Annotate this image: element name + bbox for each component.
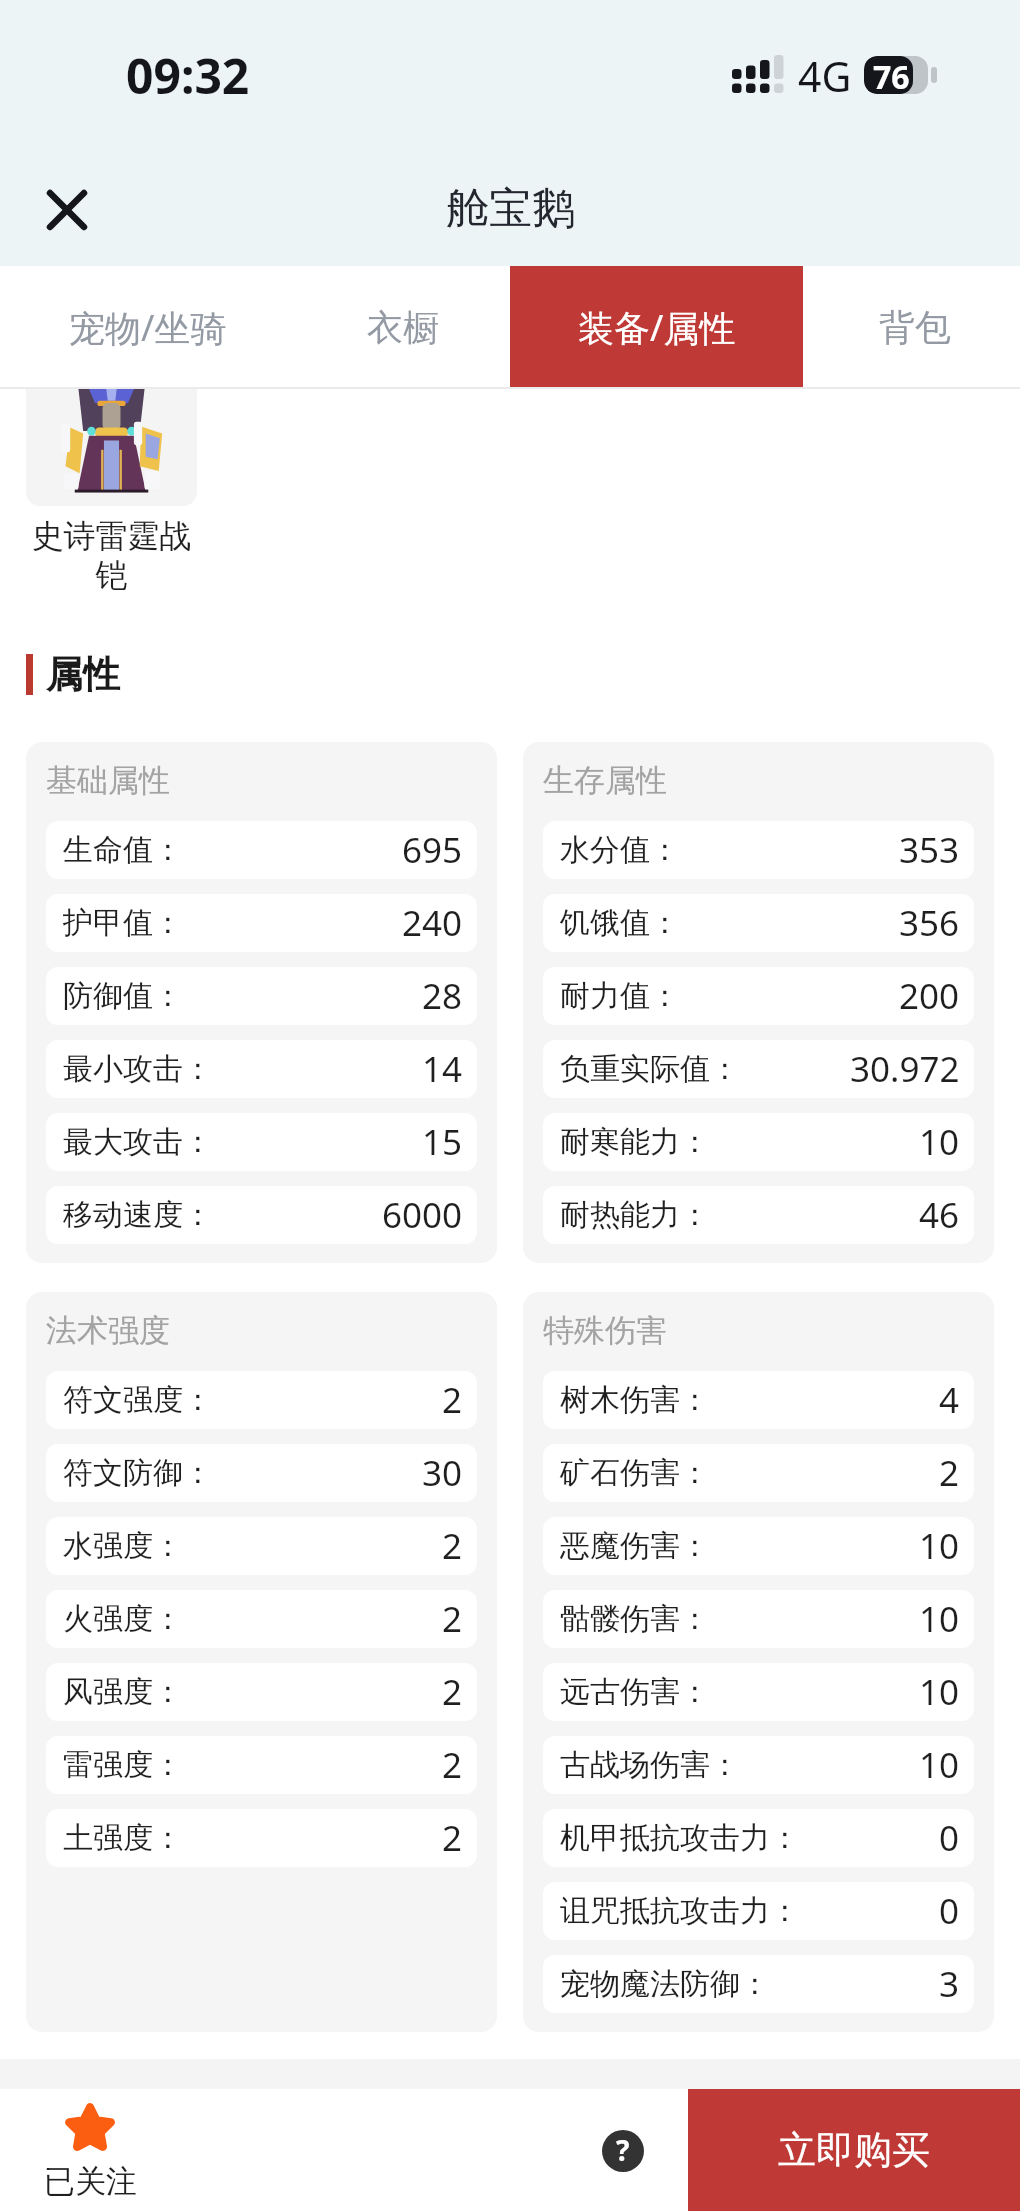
staticText: 风强度： [63, 1673, 183, 1711]
button[interactable]: 防御值： [46, 967, 477, 1025]
staticText: 695 [402, 826, 463, 874]
staticText: 衣橱 [367, 305, 439, 350]
staticText: 史诗雷霆战铠 [26, 516, 197, 596]
button[interactable]: 耐力值： [543, 967, 974, 1025]
staticText: 土强度： [63, 1819, 183, 1857]
button[interactable]: 负重实际值： [543, 1040, 974, 1098]
staticText: 耐力值： [560, 977, 680, 1015]
staticText: 负重实际值： [560, 1050, 740, 1088]
staticText: 火强度： [63, 1600, 183, 1638]
staticText: 14 [422, 1045, 463, 1093]
staticText: 符文强度： [63, 1381, 213, 1419]
staticText: 4 [939, 1376, 960, 1424]
staticText: 353 [899, 826, 960, 874]
button[interactable]: 机甲抵抗攻击力： [543, 1809, 974, 1867]
staticText: 耐热能力： [560, 1196, 710, 1234]
staticText: 防御值： [63, 977, 183, 1015]
staticText: 2 [442, 1376, 463, 1424]
staticText: 最小攻击： [63, 1050, 213, 1088]
staticText: 属性 [46, 651, 120, 698]
button[interactable]: 水强度： [46, 1517, 477, 1575]
staticText: 饥饿值： [560, 904, 680, 942]
button[interactable]: 移动速度： [46, 1186, 477, 1244]
staticText: 诅咒抵抗攻击力： [560, 1892, 800, 1930]
staticText: 背包 [879, 305, 951, 350]
button[interactable]: 护甲值： [46, 894, 477, 952]
button[interactable]: 古战场伤害： [543, 1736, 974, 1794]
staticText: 生存属性 [543, 761, 667, 800]
staticText: 4G [798, 48, 852, 104]
staticText: 矿石伤害： [560, 1454, 710, 1492]
staticText: 机甲抵抗攻击力： [560, 1819, 800, 1857]
button[interactable]: 已关注 [20, 2089, 160, 2211]
staticText: 已关注 [44, 2162, 137, 2201]
staticText: 雷强度： [63, 1746, 183, 1784]
staticText: 水分值： [560, 831, 680, 869]
staticText: 10 [919, 1595, 960, 1643]
staticText: 0 [939, 1814, 960, 1862]
staticText: 基础属性 [46, 761, 170, 800]
staticText: 30 [422, 1449, 463, 1497]
button[interactable]: 生命值： [46, 821, 477, 879]
button[interactable]: 立即购买 [688, 2089, 1020, 2211]
button[interactable]: 矿石伤害： [543, 1444, 974, 1502]
staticText: 2 [442, 1814, 463, 1862]
button[interactable]: 远古伤害： [543, 1663, 974, 1721]
staticText: 宠物魔法防御： [560, 1965, 770, 2003]
button[interactable]: 符文防御： [46, 1444, 477, 1502]
staticText: 3 [939, 1960, 960, 2008]
staticText: 2 [442, 1668, 463, 1716]
button[interactable]: 树木伤害： [543, 1371, 974, 1429]
button[interactable]: 雷强度： [46, 1736, 477, 1794]
staticText: 6000 [382, 1191, 463, 1239]
staticText: 10 [919, 1118, 960, 1166]
button[interactable]: 符文强度： [46, 1371, 477, 1429]
staticText: 2 [442, 1595, 463, 1643]
staticText: 2 [939, 1449, 960, 1497]
staticText: 立即购买 [778, 2126, 930, 2174]
staticText: 符文防御： [63, 1454, 213, 1492]
staticText: 恶魔伤害： [560, 1527, 710, 1565]
staticText: 移动速度： [63, 1196, 213, 1234]
button[interactable]: 恶魔伤害： [543, 1517, 974, 1575]
button[interactable]: Close [26, 169, 108, 251]
button[interactable]: 火强度： [46, 1590, 477, 1648]
staticText: 15 [422, 1118, 463, 1166]
button[interactable]: 宠物/坐骑 [0, 266, 255, 389]
staticText: 28 [422, 972, 463, 1020]
staticText: 2 [442, 1741, 463, 1789]
button[interactable]: 饥饿值： [543, 894, 974, 952]
staticText: 46 [919, 1191, 960, 1239]
staticText: 生命值： [63, 831, 183, 869]
button[interactable]: 宠物魔法防御： [543, 1955, 974, 2013]
staticText: 舱宝鹅 [446, 182, 575, 236]
button[interactable]: 衣橱 [255, 266, 510, 389]
staticText: 耐寒能力： [560, 1123, 710, 1161]
staticText: 最大攻击： [63, 1123, 213, 1161]
button[interactable]: 风强度： [46, 1663, 477, 1721]
staticText: 法术强度 [46, 1311, 170, 1350]
staticText: 0 [939, 1887, 960, 1935]
button[interactable]: 土强度： [46, 1809, 477, 1867]
button[interactable]: 骷髅伤害： [543, 1590, 974, 1648]
button[interactable]: 耐热能力： [543, 1186, 974, 1244]
button[interactable]: 水分值： [543, 821, 974, 879]
staticText: 树木伤害： [560, 1381, 710, 1419]
staticText: 10 [919, 1741, 960, 1789]
button[interactable]: 装备/属性 [510, 266, 803, 389]
button[interactable]: 最大攻击： [46, 1113, 477, 1171]
staticText: 10 [919, 1668, 960, 1716]
staticText: 09:32 [126, 43, 250, 108]
staticText: ? [616, 2131, 630, 2169]
button[interactable]: 背包 [803, 266, 1020, 389]
staticText: 骷髅伤害： [560, 1600, 710, 1638]
button[interactable]: 耐寒能力： [543, 1113, 974, 1171]
staticText: 特殊伤害 [543, 1311, 667, 1350]
button[interactable]: 最小攻击： [46, 1040, 477, 1098]
staticText: 水强度： [63, 1527, 183, 1565]
button[interactable]: 诅咒抵抗攻击力： [543, 1882, 974, 1940]
staticText: 30.972 [850, 1045, 960, 1093]
staticText: 200 [899, 972, 960, 1020]
staticText: 2 [442, 1522, 463, 1570]
button[interactable]: Help [602, 2130, 644, 2172]
